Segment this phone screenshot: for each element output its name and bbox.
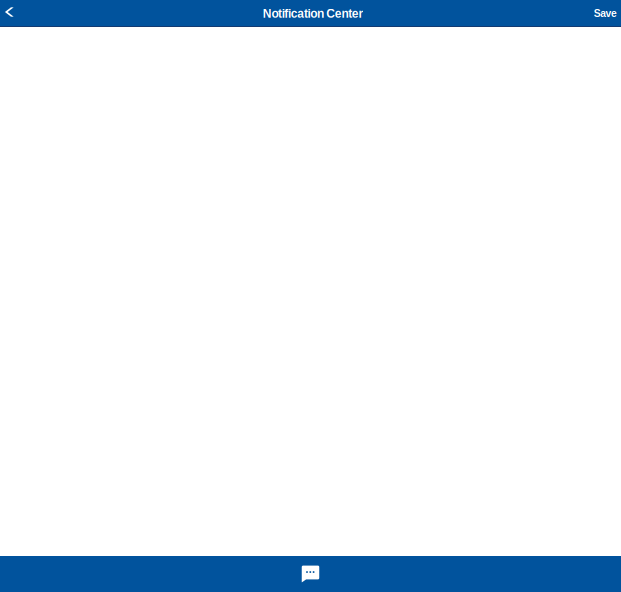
button[interactable]: Messages <box>288 556 332 592</box>
button[interactable]: Save <box>590 0 621 26</box>
staticText: Notification Center <box>263 7 363 20</box>
button[interactable]: Back <box>1 0 21 26</box>
staticText: Save <box>594 8 617 19</box>
